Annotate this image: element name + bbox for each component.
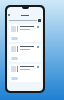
button[interactable]: Profile	[38, 19, 41, 22]
button[interactable]: Action	[11, 57, 18, 60]
button[interactable]: Action	[9, 64, 41, 82]
button[interactable]: Action	[11, 77, 18, 80]
button[interactable]: Action	[11, 37, 18, 40]
button[interactable]: Action	[9, 44, 41, 62]
button[interactable]: Menu	[7, 12, 43, 18]
button[interactable]: Action	[9, 24, 41, 42]
